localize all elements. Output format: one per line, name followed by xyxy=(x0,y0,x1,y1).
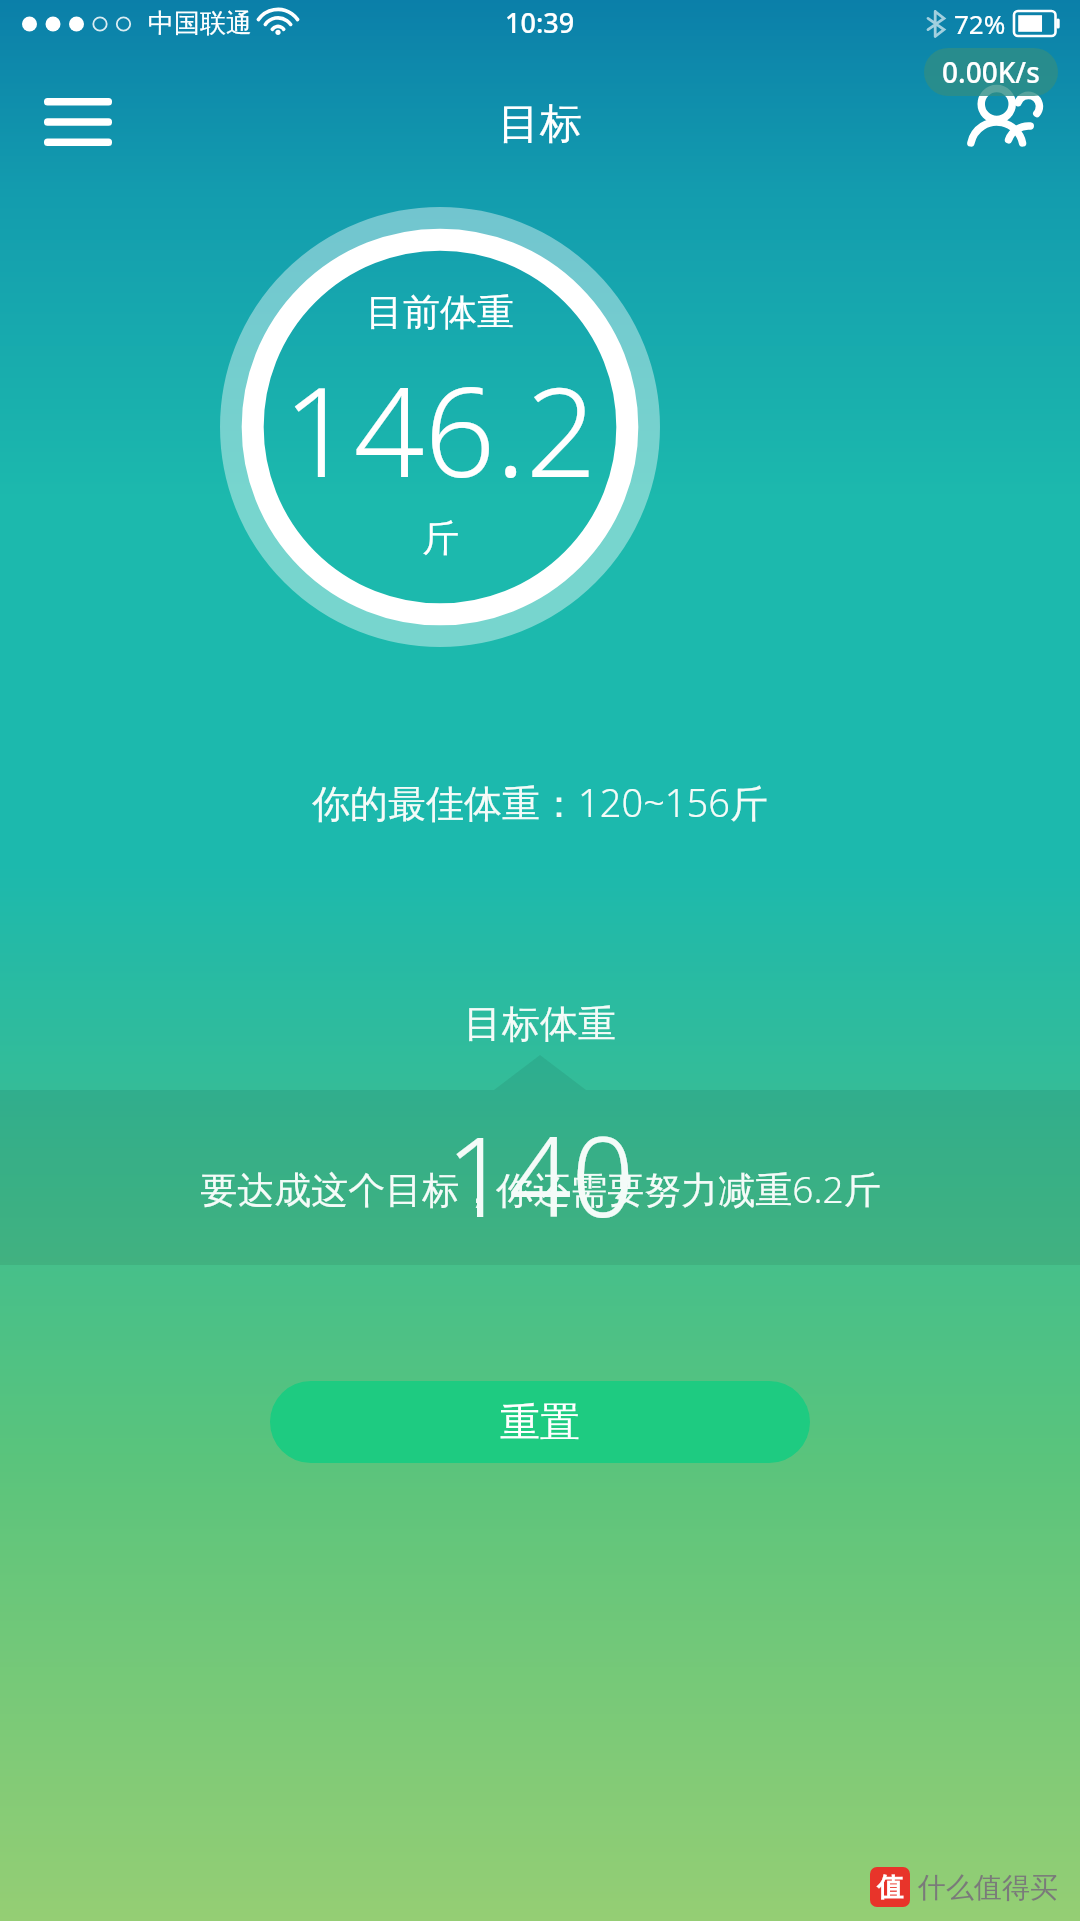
staticText: 什么值得买 xyxy=(918,1870,1058,1905)
button[interactable]: Friends xyxy=(956,80,1048,164)
staticText: 目标 xyxy=(498,98,582,151)
staticText: 72% xyxy=(954,6,1006,41)
staticText: 中国联通 xyxy=(148,7,252,40)
staticText: 要达成这个目标，你还需要努力减重6.2斤 xyxy=(200,1163,881,1214)
staticText: 10:39 xyxy=(505,4,575,41)
staticText: 目前体重 xyxy=(366,289,514,336)
staticText: 值 xyxy=(877,1871,903,1904)
button[interactable]: 重置 xyxy=(270,1381,810,1463)
staticText: 斤 xyxy=(422,515,459,562)
staticText: 重置 xyxy=(500,1397,580,1447)
button[interactable]: Menu xyxy=(40,86,116,158)
staticText: 140 xyxy=(446,1099,635,1249)
staticText: 0.00K/s xyxy=(942,53,1040,91)
staticText: 你的最佳体重：120~156斤 xyxy=(312,776,768,828)
staticText: 目标体重 xyxy=(464,1000,616,1048)
button[interactable]: 目前体重 xyxy=(218,205,662,649)
staticText: 146.2 xyxy=(283,344,597,513)
